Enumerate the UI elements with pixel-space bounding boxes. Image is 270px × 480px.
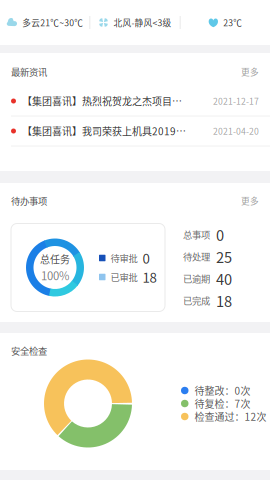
staticText: 18 xyxy=(142,267,156,287)
staticText: 待审批 xyxy=(110,251,137,265)
staticText: 已完成 xyxy=(183,294,210,307)
staticText: 待办事项 xyxy=(11,194,47,207)
staticText: 总事项 xyxy=(183,228,210,241)
staticText: 已审批 xyxy=(110,270,137,284)
staticText: 安全检查 xyxy=(11,344,47,357)
staticText: 检查通过：12次 xyxy=(194,409,266,424)
staticText: 100% xyxy=(41,267,69,283)
staticText: 已逾期 xyxy=(183,272,210,285)
staticText: 25 xyxy=(216,246,232,267)
staticText: 2021-04-20 xyxy=(213,125,259,137)
staticText: 2021-12-17 xyxy=(213,95,259,107)
staticText: 更多 xyxy=(241,194,259,207)
staticText: 最新资讯 xyxy=(11,65,47,78)
staticText: 多云21℃~30℃ xyxy=(22,16,83,29)
button[interactable]: 更多 xyxy=(241,194,259,207)
staticText: 待复检：7次 xyxy=(194,396,250,411)
button[interactable]: 【集团喜讯】热烈祝贺龙之杰项目… xyxy=(0,86,270,115)
staticText: 总任务 xyxy=(40,252,70,266)
staticText: 0 xyxy=(142,248,149,268)
staticText: 【集团喜讯】我司荣获上机具2019… xyxy=(22,124,186,138)
staticText: 23℃ xyxy=(223,16,242,29)
staticText: 【集团喜讯】热烈祝贺龙之杰项目… xyxy=(22,94,182,108)
button[interactable]: 更多 xyxy=(241,65,259,78)
staticText: 待处理 xyxy=(183,250,210,263)
staticText: 40 xyxy=(216,268,232,289)
staticText: 更多 xyxy=(241,65,259,78)
staticText: 北风-静风<3级 xyxy=(113,16,171,29)
staticText: 0 xyxy=(216,224,224,245)
button[interactable]: 【集团喜讯】我司荣获上机具2019… xyxy=(0,116,270,145)
staticText: 待整改：0次 xyxy=(194,383,250,398)
staticText: 18 xyxy=(216,290,232,311)
